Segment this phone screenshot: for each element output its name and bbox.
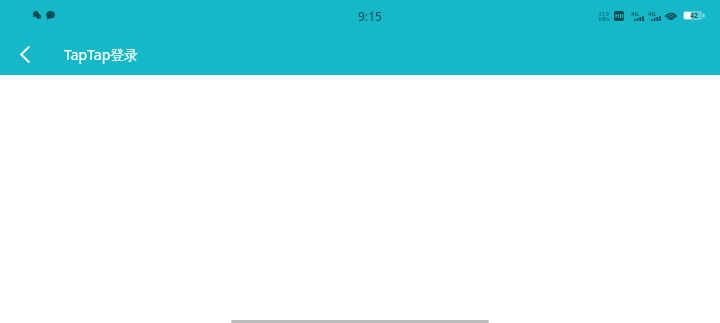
button[interactable]: Back — [6, 35, 44, 73]
button[interactable]: TapTap登录 — [56, 38, 146, 70]
staticText: 9:15 — [358, 8, 382, 24]
staticText: 4G — [631, 10, 639, 18]
staticText: HD — [615, 12, 624, 20]
staticText: 21.9 KB/s — [599, 11, 610, 22]
staticText: TapTap登录 — [64, 45, 139, 64]
staticText: 42 — [690, 11, 699, 20]
staticText: 4G — [648, 10, 656, 18]
